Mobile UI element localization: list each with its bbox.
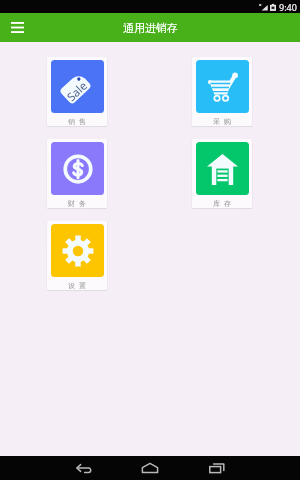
button[interactable]: Recents xyxy=(205,456,229,480)
button[interactable]: 财务 xyxy=(47,139,107,208)
button[interactable]: 采购 xyxy=(192,57,252,126)
staticText: 通用进销存 xyxy=(123,21,178,35)
button[interactable]: Home xyxy=(138,456,162,480)
staticText: 9:40 xyxy=(279,1,297,13)
button[interactable]: Open navigation menu xyxy=(4,15,30,41)
button[interactable]: Back xyxy=(71,456,95,480)
staticText: 库存 xyxy=(211,199,233,208)
staticText: 销售 xyxy=(66,117,88,126)
staticText: 设置 xyxy=(66,281,88,290)
button[interactable]: 库存 xyxy=(192,139,252,208)
staticText: 采购 xyxy=(211,117,233,126)
staticText: 财务 xyxy=(66,199,88,208)
staticText: Sale xyxy=(63,77,91,105)
button[interactable]: 设置 xyxy=(47,221,107,290)
button[interactable]: Sale xyxy=(47,57,107,126)
